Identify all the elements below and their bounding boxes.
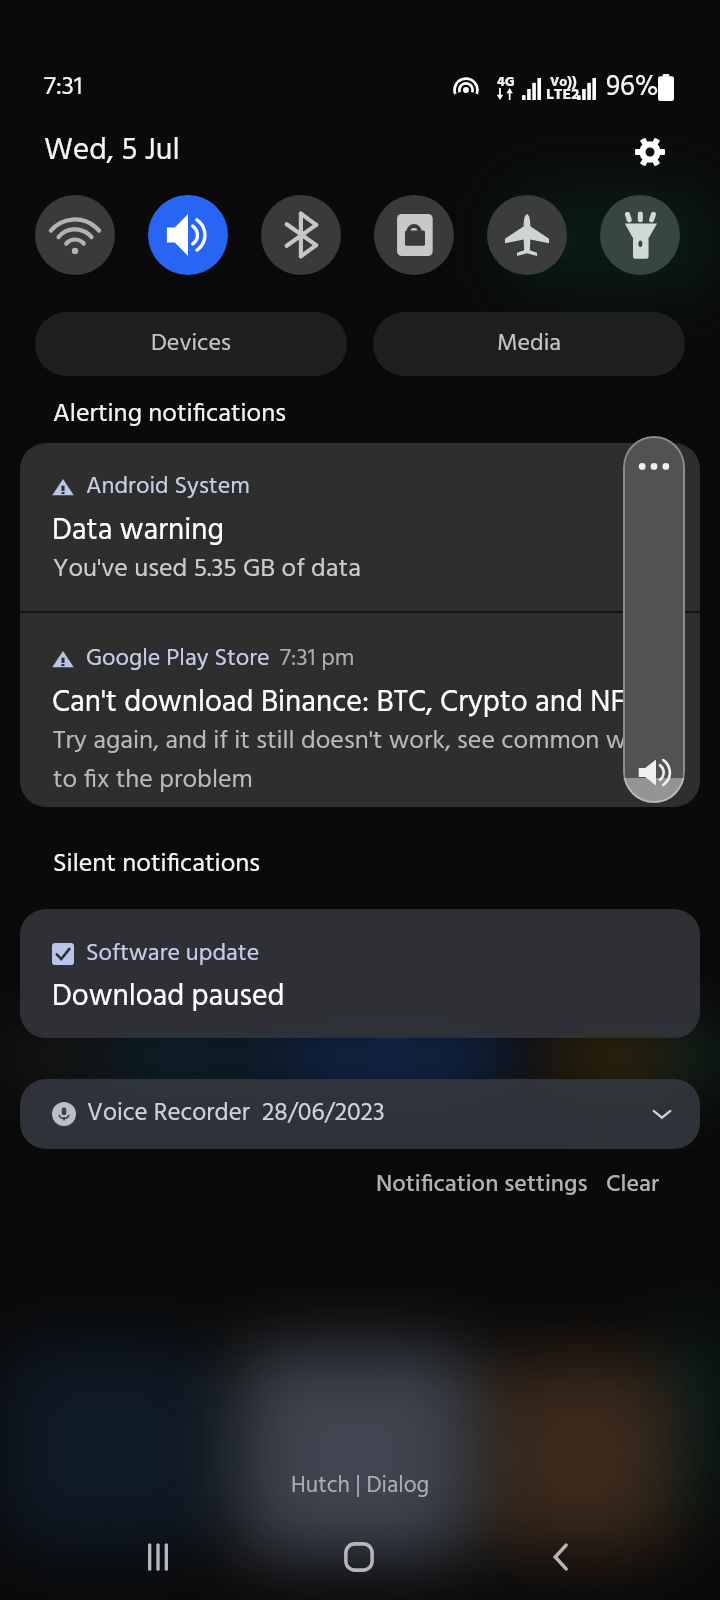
button[interactable]: Back <box>536 1532 586 1582</box>
staticText: 28/06/2023 <box>262 1094 385 1134</box>
staticText: LTE2 <box>546 82 580 108</box>
staticText: Vo)) <box>550 71 577 93</box>
button[interactable]: Airplane mode <box>487 195 567 275</box>
staticText: 7:31 <box>44 67 83 109</box>
staticText: 96% <box>606 65 659 110</box>
button[interactable]: Notification settings <box>376 1160 592 1210</box>
staticText: 4G <box>497 71 515 93</box>
staticText: You've used 5.35 GB of data <box>53 549 361 591</box>
button[interactable]: Flashlight <box>600 195 680 275</box>
staticText: Google Play Store <box>86 640 270 678</box>
staticText: Silent notifications <box>53 844 261 886</box>
button[interactable]: Recents <box>133 1532 183 1582</box>
staticText: Can't download Binance: BTC, Crypto and … <box>52 679 640 727</box>
staticText: Wed, 5 Jul <box>44 126 180 176</box>
button[interactable]: Media <box>373 312 685 376</box>
button[interactable]: Devices <box>35 312 347 376</box>
button[interactable]: Home <box>334 1532 384 1582</box>
staticText: Hutch | Dialog <box>291 1468 430 1505</box>
staticText: Notification settings <box>376 1166 588 1204</box>
button[interactable]: Voice Recorder <box>20 1079 700 1149</box>
staticText: Clear <box>606 1166 660 1204</box>
button[interactable]: Software update <box>20 909 700 1038</box>
staticText: Android System <box>86 468 250 506</box>
button[interactable]: Sound <box>148 195 228 275</box>
staticText: Data warning <box>52 507 224 555</box>
button[interactable]: Clear <box>606 1160 676 1210</box>
button[interactable]: Android System <box>20 443 700 611</box>
staticText: to fix the problem <box>53 760 253 802</box>
button[interactable]: Google Play Store <box>20 613 700 807</box>
button[interactable]: Settings <box>628 130 672 174</box>
staticText: Alerting notifications <box>53 394 286 436</box>
staticText: Media <box>497 325 562 363</box>
staticText: 7:31 pm <box>280 640 355 678</box>
button[interactable]: Volume <box>623 436 685 803</box>
staticText: Software update <box>86 935 260 973</box>
button[interactable]: Wi-Fi <box>35 195 115 275</box>
staticText: Devices <box>151 325 231 363</box>
staticText: Download paused <box>52 973 285 1021</box>
button[interactable]: Expand <box>647 1099 677 1129</box>
staticText: Voice Recorder <box>87 1094 250 1134</box>
button[interactable]: Bluetooth <box>261 195 341 275</box>
button[interactable]: SIM card lock <box>374 195 454 275</box>
staticText: Try again, and if it still doesn't work,… <box>53 721 663 763</box>
